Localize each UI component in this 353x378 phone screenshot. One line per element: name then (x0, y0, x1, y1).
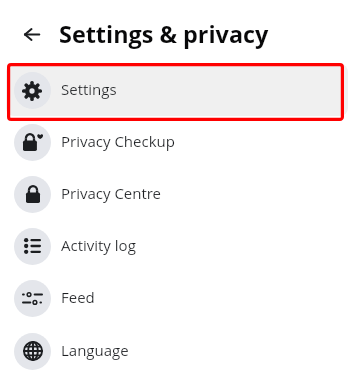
button[interactable]: Privacy Centre (0, 168, 353, 220)
button[interactable]: Privacy Checkup (0, 116, 353, 168)
button[interactable]: Back (14, 16, 50, 52)
staticText: Feed (61, 287, 95, 307)
staticText: Settings & privacy (59, 18, 269, 50)
staticText: Language (61, 340, 129, 360)
staticText: Settings (61, 79, 117, 99)
button[interactable]: Language (0, 325, 353, 377)
button[interactable]: Activity log (0, 220, 353, 272)
staticText: Privacy Centre (61, 183, 162, 203)
button[interactable]: Settings (0, 64, 353, 116)
button[interactable]: Feed (0, 272, 353, 324)
staticText: Privacy Checkup (61, 131, 175, 151)
staticText: Activity log (61, 235, 136, 255)
